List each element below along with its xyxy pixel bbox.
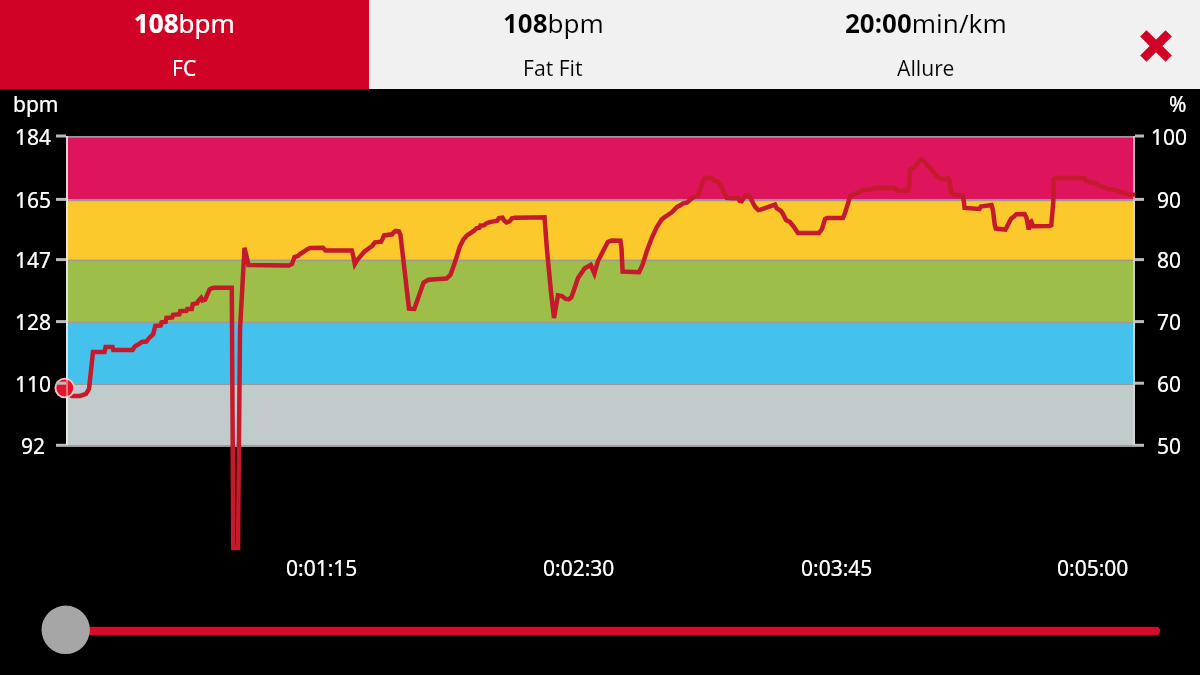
- button[interactable]: Seek position: [30, 597, 1170, 663]
- staticText: bpm: [13, 90, 59, 119]
- staticText: 0:02:30: [543, 554, 615, 583]
- staticText: 165: [15, 186, 52, 215]
- staticText: 80: [1157, 246, 1182, 275]
- staticText: 0:03:45: [801, 554, 873, 583]
- staticText: %: [1169, 90, 1187, 119]
- staticText: 108bpm: [134, 5, 235, 40]
- button[interactable]: 20:00min/km: [737, 0, 1114, 89]
- staticText: 92: [21, 432, 46, 461]
- staticText: Fat Fit: [523, 54, 583, 83]
- staticText: 184: [15, 123, 52, 152]
- staticText: 0:01:15: [286, 554, 358, 583]
- staticText: 90: [1157, 186, 1182, 215]
- staticText: 147: [15, 246, 52, 275]
- staticText: 0:05:00: [1057, 554, 1129, 583]
- button[interactable]: 108bpm: [0, 0, 369, 89]
- staticText: 110: [15, 370, 52, 399]
- staticText: 50: [1157, 432, 1182, 461]
- button[interactable]: 108bpm: [369, 0, 737, 89]
- staticText: 128: [15, 308, 52, 337]
- staticText: FC: [172, 54, 197, 83]
- staticText: Allure: [897, 54, 955, 83]
- staticText: 70: [1157, 308, 1182, 337]
- staticText: 20:00min/km: [845, 5, 1007, 40]
- staticText: 108bpm: [503, 5, 604, 40]
- staticText: 100: [1151, 123, 1188, 152]
- staticText: 60: [1157, 370, 1182, 399]
- button[interactable]: Close: [1114, 0, 1200, 89]
